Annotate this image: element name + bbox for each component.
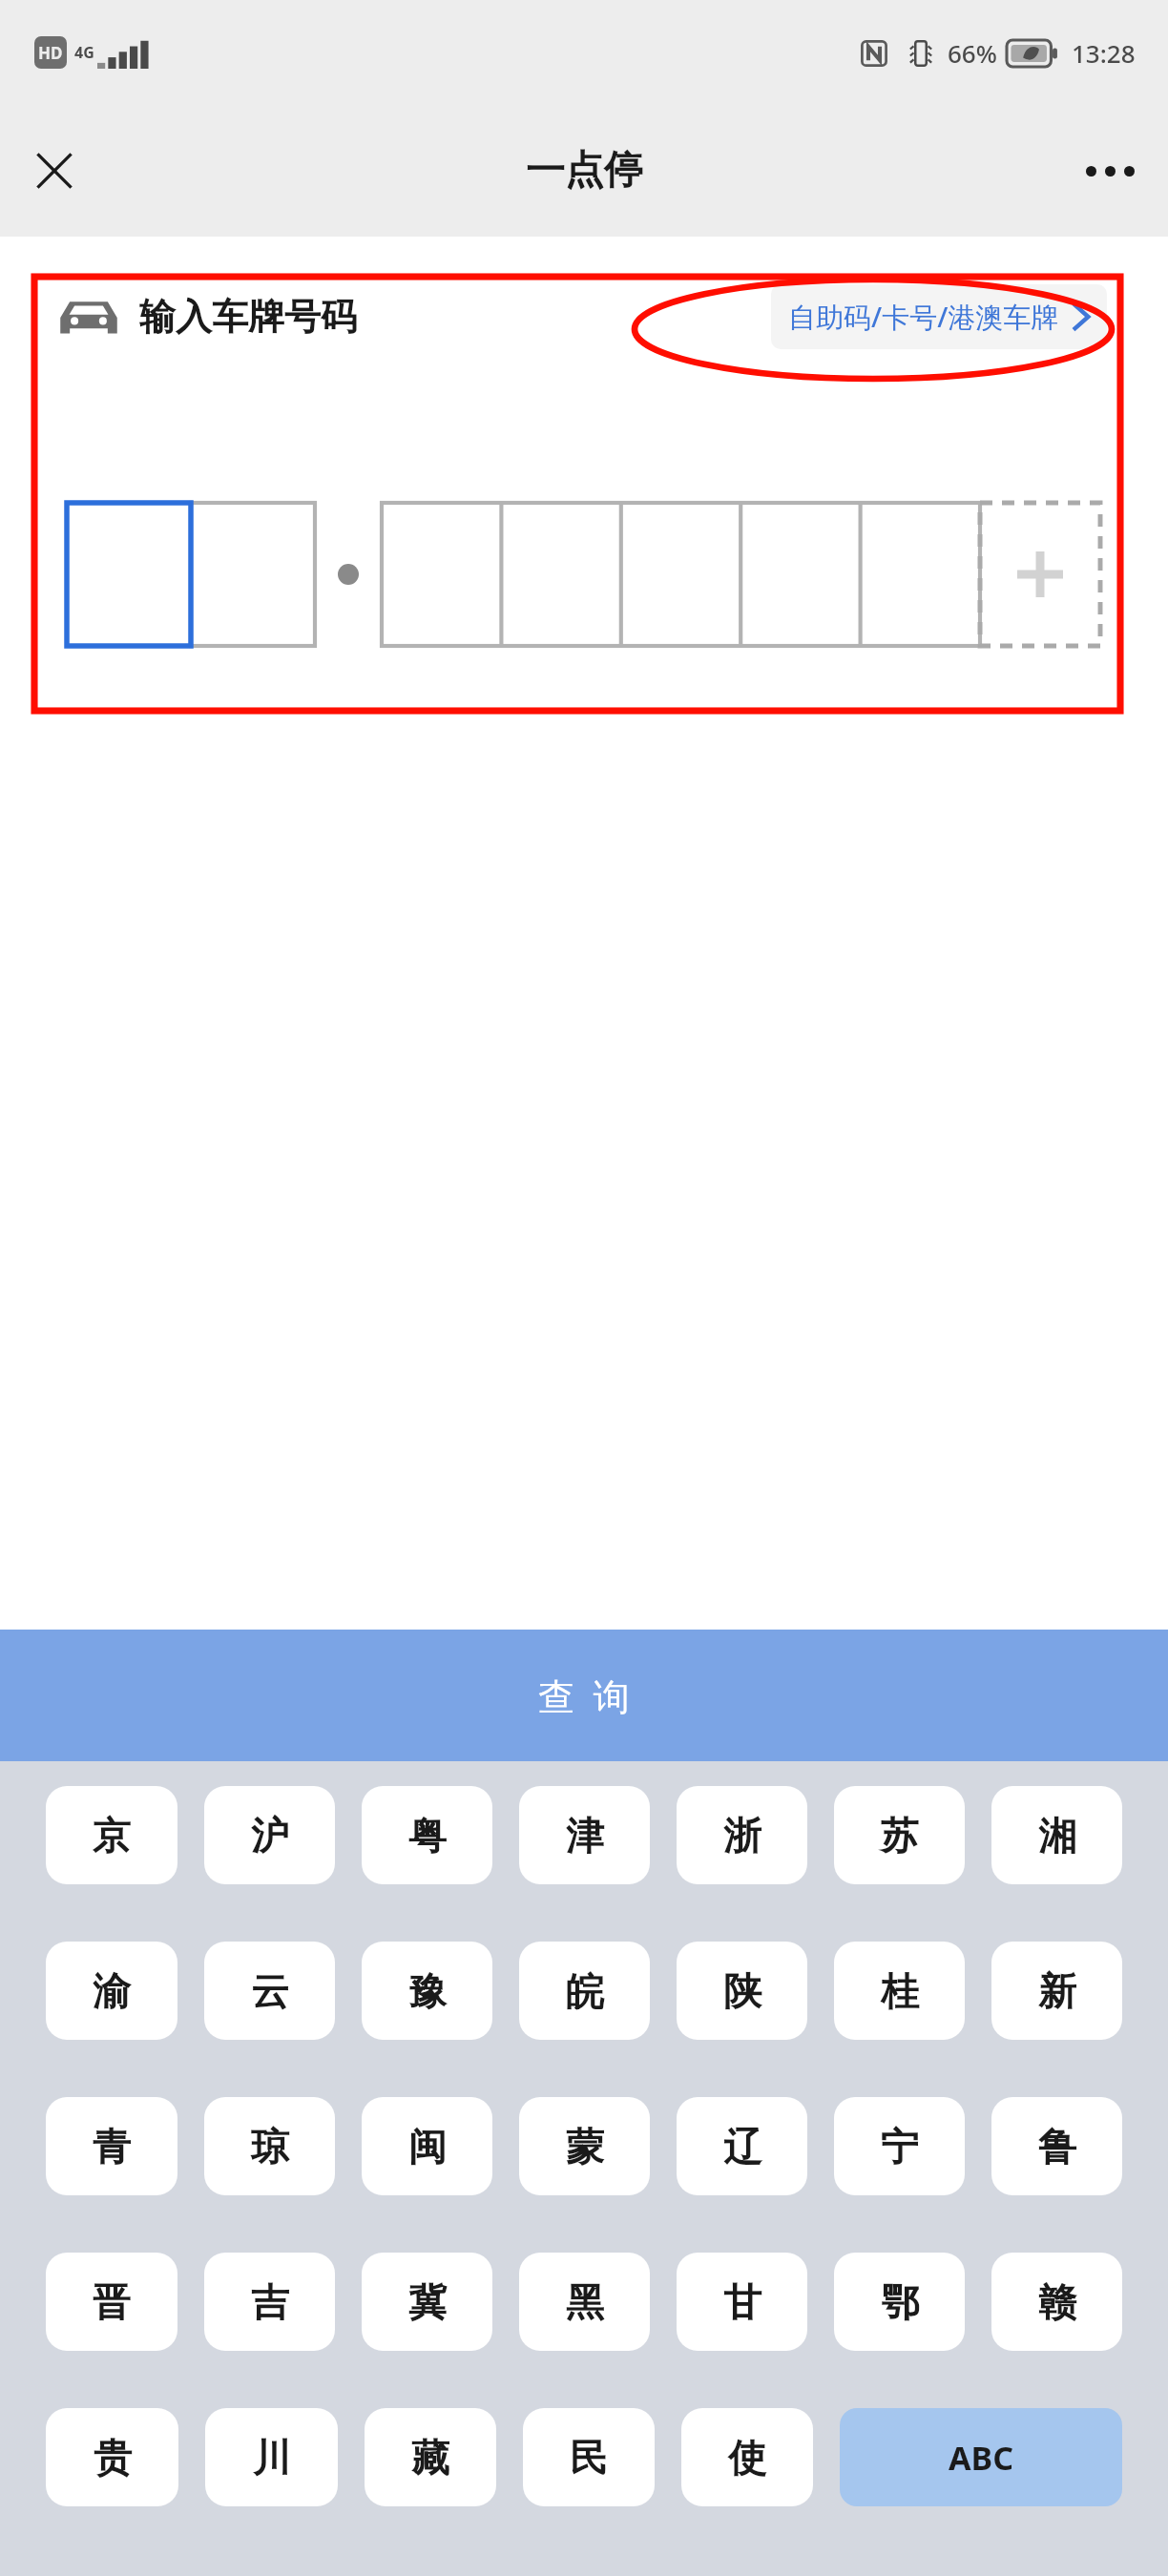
button[interactable]: 使	[681, 2408, 813, 2506]
button[interactable]: 冀	[362, 2253, 492, 2351]
button[interactable]: 云	[204, 1942, 335, 2040]
staticText: 津	[566, 1812, 604, 1859]
staticText: 自助码/卡号/港澳车牌	[788, 298, 1059, 336]
button[interactable]: 黑	[519, 2253, 650, 2351]
button[interactable]: Province	[67, 503, 191, 646]
button[interactable]: 晋	[46, 2253, 177, 2351]
button[interactable]: 川	[205, 2408, 338, 2506]
staticText: 4G	[74, 42, 94, 63]
staticText: 云	[251, 1967, 289, 2015]
staticText: 一点停	[526, 146, 643, 196]
staticText: 贵	[94, 2434, 132, 2482]
button[interactable]: 宁	[834, 2097, 965, 2195]
staticText: 冀	[408, 2278, 447, 2326]
staticText: 宁	[881, 2123, 919, 2171]
button[interactable]: 桂	[834, 1942, 965, 2040]
staticText: 吉	[251, 2278, 289, 2326]
staticText: 桂	[881, 1967, 919, 2015]
staticText: 蒙	[566, 2123, 604, 2171]
button[interactable]: 新	[991, 1942, 1122, 2040]
staticText: 豫	[408, 1967, 447, 2015]
staticText: 粤	[408, 1812, 447, 1859]
staticText: 赣	[1038, 2278, 1076, 2326]
button[interactable]: 自助码/卡号/港澳车牌	[771, 284, 1107, 349]
staticText: 新	[1038, 1967, 1076, 2015]
button[interactable]: 琼	[204, 2097, 335, 2195]
button[interactable]: 沪	[204, 1786, 335, 1884]
staticText: 皖	[566, 1967, 604, 2015]
button[interactable]: 赣	[991, 2253, 1122, 2351]
staticText: 川	[253, 2434, 291, 2482]
button[interactable]: 民	[523, 2408, 655, 2506]
button[interactable]: 皖	[519, 1942, 650, 2040]
staticText: 使	[728, 2434, 766, 2482]
button[interactable]: Plate char	[382, 503, 501, 646]
button[interactable]: 鲁	[991, 2097, 1122, 2195]
button[interactable]: 陕	[677, 1942, 807, 2040]
button[interactable]: 湘	[991, 1786, 1122, 1884]
button[interactable]: More options	[1069, 130, 1151, 212]
button[interactable]: 浙	[677, 1786, 807, 1884]
staticText: HD	[38, 42, 63, 64]
staticText: 黑	[566, 2278, 604, 2326]
button[interactable]: 贵	[46, 2408, 178, 2506]
button[interactable]: ABC	[840, 2408, 1122, 2506]
staticText: 13:28	[1072, 36, 1136, 70]
staticText: 晋	[93, 2278, 131, 2326]
button[interactable]: Plate char	[859, 503, 978, 646]
button[interactable]: 京	[46, 1786, 177, 1884]
staticText: 浙	[723, 1812, 761, 1859]
button[interactable]: 青	[46, 2097, 177, 2195]
staticText: 渝	[93, 1967, 131, 2015]
button[interactable]: 津	[519, 1786, 650, 1884]
staticText: 66%	[948, 36, 997, 70]
button[interactable]: Add new energy digit	[978, 503, 1098, 646]
button[interactable]: 鄂	[834, 2253, 965, 2351]
staticText: 民	[570, 2434, 608, 2482]
staticText: 陕	[723, 1967, 761, 2015]
button[interactable]: 藏	[365, 2408, 496, 2506]
button[interactable]: 吉	[204, 2253, 335, 2351]
staticText: 湘	[1038, 1812, 1076, 1859]
button[interactable]: Plate char	[501, 503, 620, 646]
button[interactable]: 辽	[677, 2097, 807, 2195]
staticText: 京	[93, 1812, 131, 1859]
button[interactable]: 粤	[362, 1786, 492, 1884]
button[interactable]: Plate char	[740, 503, 859, 646]
button[interactable]: 苏	[834, 1786, 965, 1884]
staticText: 青	[93, 2123, 131, 2171]
staticText: 辽	[723, 2123, 761, 2171]
button[interactable]: 甘	[677, 2253, 807, 2351]
staticText: 藏	[411, 2434, 449, 2482]
button[interactable]: Letter	[191, 503, 315, 646]
staticText: ABC	[949, 2436, 1013, 2480]
button[interactable]: 渝	[46, 1942, 177, 2040]
staticText: 甘	[723, 2278, 761, 2326]
staticText: 闽	[408, 2123, 447, 2171]
button[interactable]: Plate char	[620, 503, 740, 646]
staticText: 沪	[251, 1812, 289, 1859]
staticText: 琼	[251, 2123, 289, 2171]
button[interactable]: 豫	[362, 1942, 492, 2040]
staticText: 鲁	[1038, 2123, 1076, 2171]
staticText: 鄂	[881, 2278, 919, 2326]
button[interactable]: 蒙	[519, 2097, 650, 2195]
staticText: 苏	[881, 1812, 919, 1859]
staticText: 查 询	[538, 1671, 630, 1720]
button[interactable]: 查 询	[0, 1630, 1168, 1761]
button[interactable]: 闽	[362, 2097, 492, 2195]
button[interactable]: Close	[13, 130, 95, 212]
staticText: 输入车牌号码	[139, 294, 357, 340]
